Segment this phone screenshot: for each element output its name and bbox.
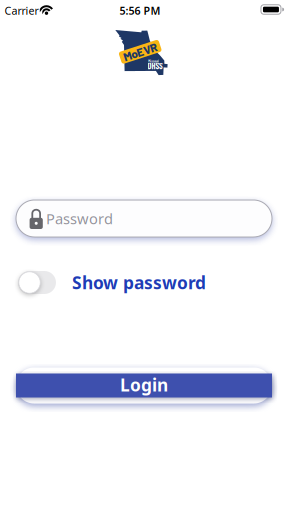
staticText: MoEVR bbox=[123, 45, 158, 59]
button[interactable]: Show password bbox=[18, 271, 56, 294]
button[interactable]: Password bbox=[16, 200, 272, 237]
button[interactable]: Login bbox=[15, 366, 272, 404]
staticText: Carrier bbox=[4, 3, 38, 18]
staticText: DHSS bbox=[140, 56, 170, 76]
staticText: Password bbox=[46, 209, 113, 228]
staticText: Login bbox=[120, 373, 168, 396]
staticText: 5:56 PM bbox=[119, 3, 160, 18]
staticText: Show password bbox=[72, 271, 206, 294]
staticText: Missouri bbox=[143, 56, 165, 65]
